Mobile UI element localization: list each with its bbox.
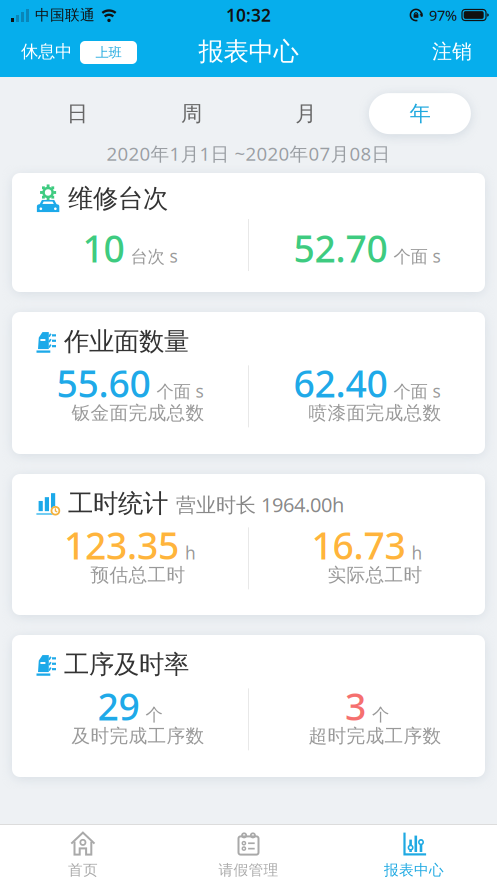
- staticText: 钣金面完成总数: [71, 402, 204, 425]
- staticText: 年: [409, 100, 430, 127]
- staticText: 超时完成工序数: [308, 725, 441, 748]
- staticText: 123.35: [64, 520, 179, 570]
- staticText: 55.60: [56, 358, 150, 408]
- staticText: 个: [145, 704, 162, 725]
- staticText: 报表中心: [198, 36, 298, 67]
- button[interactable]: 报表中心: [331, 825, 497, 883]
- button[interactable]: 首页: [0, 825, 166, 883]
- staticText: h: [411, 541, 422, 564]
- staticText: h: [185, 541, 196, 564]
- button[interactable]: 月: [248, 93, 363, 134]
- staticText: 10: [82, 223, 124, 273]
- staticText: 报表中心: [384, 861, 444, 879]
- staticText: 实际总工时: [327, 564, 422, 587]
- staticText: 首页: [68, 861, 98, 879]
- staticText: 注销: [432, 39, 472, 64]
- staticText: 52.70: [293, 223, 387, 273]
- staticText: 维修台次: [68, 183, 168, 214]
- staticText: 台次 s: [130, 245, 177, 268]
- staticText: 中国联通: [35, 6, 95, 24]
- staticText: 休息中: [21, 41, 72, 62]
- staticText: 工序及时率: [64, 649, 189, 680]
- staticText: 10:32: [226, 3, 271, 26]
- staticText: 个: [372, 704, 389, 725]
- staticText: 个面 s: [393, 379, 440, 402]
- staticText: 月: [295, 100, 316, 127]
- staticText: 周: [181, 100, 202, 127]
- button[interactable]: 请假管理: [166, 825, 331, 883]
- staticText: 工时统计: [68, 488, 168, 519]
- button[interactable]: 周: [134, 93, 248, 134]
- staticText: 3: [345, 681, 366, 731]
- staticText: 2020年1月1日 ~2020年07月08日: [106, 141, 390, 166]
- staticText: 营业时长 1964.00h: [176, 491, 344, 518]
- staticText: 个面 s: [156, 379, 203, 402]
- button[interactable]: 上班: [80, 41, 137, 64]
- staticText: 预估总工时: [90, 564, 185, 587]
- staticText: 请假管理: [218, 861, 278, 879]
- staticText: 上班: [95, 44, 121, 61]
- staticText: 日: [67, 100, 88, 127]
- button[interactable]: 注销: [432, 41, 472, 66]
- staticText: 97%: [429, 5, 457, 25]
- staticText: 29: [97, 681, 139, 731]
- staticText: 62.40: [293, 358, 387, 408]
- staticText: 作业面数量: [64, 326, 189, 357]
- button[interactable]: 日: [20, 93, 134, 134]
- staticText: 喷漆面完成总数: [308, 402, 441, 425]
- staticText: 16.73: [311, 520, 405, 570]
- button[interactable]: 年: [363, 93, 477, 134]
- staticText: 及时完成工序数: [71, 725, 204, 748]
- staticText: 个面 s: [393, 245, 440, 268]
